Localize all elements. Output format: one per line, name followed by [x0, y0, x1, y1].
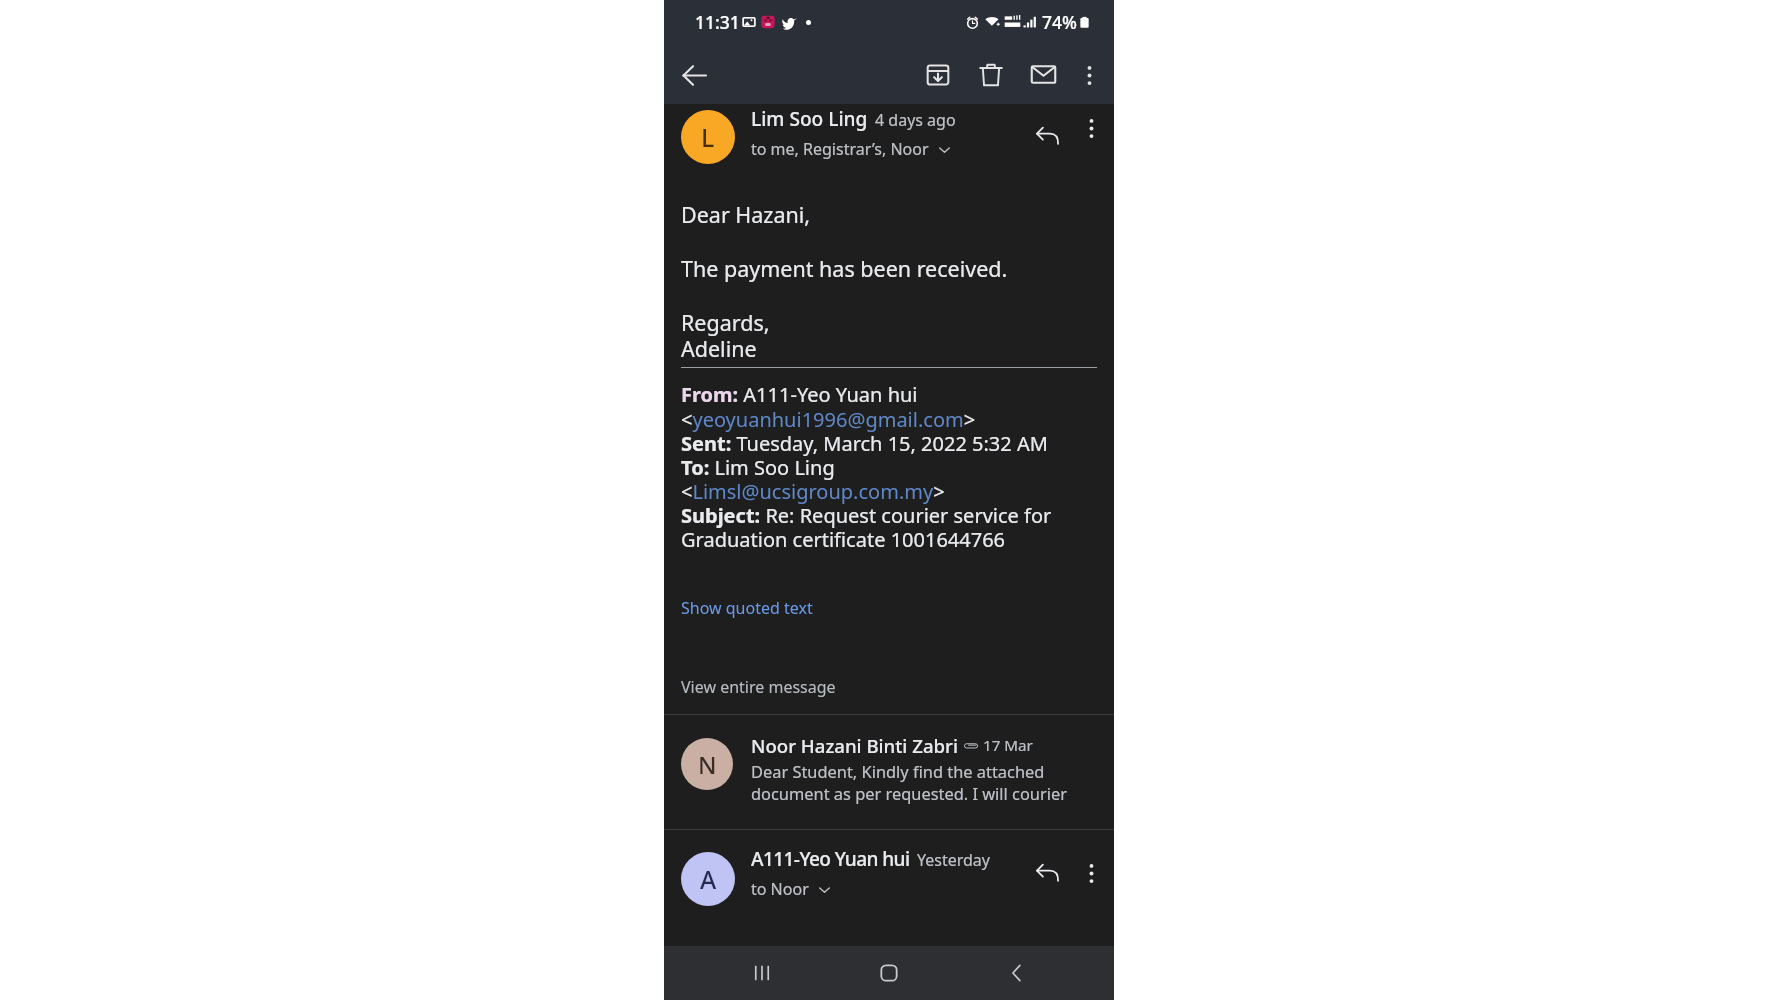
staticText: Dear Student, Kindly find the attached d… — [751, 760, 1067, 805]
staticText: to Noor — [751, 878, 809, 900]
button[interactable]: View entire message — [681, 668, 1097, 706]
staticText: The payment has been received. — [681, 254, 1008, 283]
staticText: Dear Hazani, — [681, 200, 811, 229]
button[interactable]: Contact photo — [681, 738, 733, 790]
staticText: Yesterday — [917, 849, 991, 871]
button[interactable]: Contact photo — [681, 110, 735, 164]
button[interactable]: to Noor — [751, 878, 832, 900]
button[interactable]: Navigate up — [672, 53, 716, 97]
staticText: Lim Soo Ling — [751, 106, 868, 132]
button[interactable]: Recent apps — [732, 946, 792, 1000]
button[interactable]: Mark as unread — [1017, 48, 1070, 101]
staticText: 74% — [1042, 10, 1077, 34]
staticText: Noor Hazani Binti Zabri — [751, 733, 958, 758]
button[interactable]: More options — [1070, 56, 1108, 94]
staticText: From: A111-Yeo Yuan hui <yeoyuanhui1996@… — [681, 381, 1097, 553]
button[interactable]: Show quoted text — [681, 589, 1097, 627]
button[interactable]: Home — [859, 946, 919, 1000]
staticText: View entire message — [681, 676, 836, 698]
button[interactable]: Contact photo — [681, 852, 735, 906]
button[interactable]: More options — [1073, 110, 1109, 146]
button[interactable]: Archive — [911, 48, 964, 101]
staticText: A111-Yeo Yuan hui — [751, 846, 910, 872]
staticText: 11:31 — [695, 10, 740, 34]
staticText: L — [701, 120, 715, 154]
staticText: Show quoted text — [681, 597, 813, 619]
staticText: to me, Registrar’s, Noor — [751, 138, 929, 160]
button[interactable]: Delete — [964, 48, 1017, 101]
button[interactable]: Contact photo — [664, 715, 1114, 829]
staticText: Regards, Adeline — [681, 308, 770, 364]
staticText: 4 days ago — [875, 109, 956, 131]
staticText: N — [698, 748, 717, 781]
button[interactable]: Reply — [1022, 110, 1073, 161]
button[interactable]: to me, Registrar’s, Noor — [751, 138, 952, 160]
button[interactable]: More options — [1073, 855, 1109, 891]
staticText: A — [700, 862, 717, 896]
button[interactable]: Reply — [1022, 847, 1073, 898]
button[interactable]: Back — [987, 946, 1047, 1000]
staticText: 17 Mar — [983, 735, 1033, 756]
